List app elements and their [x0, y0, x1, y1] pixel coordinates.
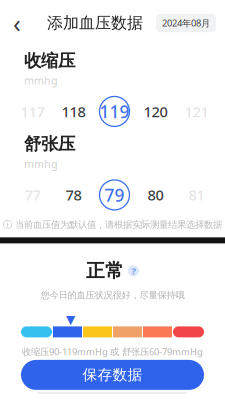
staticText: 77 [24, 185, 40, 205]
staticText: 当前血压值为默认值，请根据实际测量结果选择数据 [15, 219, 222, 230]
staticText: 80 [147, 185, 163, 205]
staticText: 您今日的血压状况很好，尽量保持哦 [40, 289, 184, 301]
staticText: 118 [61, 102, 85, 121]
staticText: 79 [104, 183, 124, 206]
staticText: 收缩压 [24, 50, 75, 71]
staticText: 78 [65, 185, 81, 205]
button[interactable]: 保存数据 [21, 360, 204, 390]
staticText: mmhg [24, 73, 58, 87]
staticText: ▼ [66, 313, 75, 326]
button[interactable]: 79 [94, 179, 135, 211]
button[interactable]: 帮助 [128, 265, 139, 276]
button[interactable]: 77 [12, 179, 53, 211]
staticText: ⓘ [3, 219, 12, 230]
button[interactable]: 2024年08月 [156, 14, 216, 32]
staticText: 舒张压 [24, 133, 75, 155]
button[interactable]: 117 [12, 95, 53, 127]
button[interactable]: 80 [135, 179, 176, 211]
staticText: 117 [20, 102, 44, 121]
button[interactable]: 返回 [0, 8, 34, 38]
staticText: 添加血压数据 [47, 13, 143, 33]
button[interactable]: 121 [176, 95, 217, 127]
staticText: mmhg [24, 157, 58, 171]
staticText: ? [131, 265, 135, 277]
button[interactable]: 81 [176, 179, 217, 211]
button[interactable]: 119 [94, 95, 135, 127]
staticText: 正常 [86, 259, 124, 282]
button[interactable]: 78 [53, 179, 94, 211]
staticText: 收缩压90-119mmHg 或 舒张压60-79mmHg [22, 345, 203, 358]
button[interactable]: 120 [135, 95, 176, 127]
staticText: 119 [99, 100, 129, 123]
staticText: ‹ [13, 6, 21, 40]
staticText: 2024年08月 [162, 17, 210, 29]
staticText: 120 [143, 102, 167, 121]
staticText: 81 [188, 185, 204, 205]
staticText: 保存数据 [82, 366, 142, 384]
button[interactable]: 118 [53, 95, 94, 127]
staticText: 121 [184, 102, 208, 121]
